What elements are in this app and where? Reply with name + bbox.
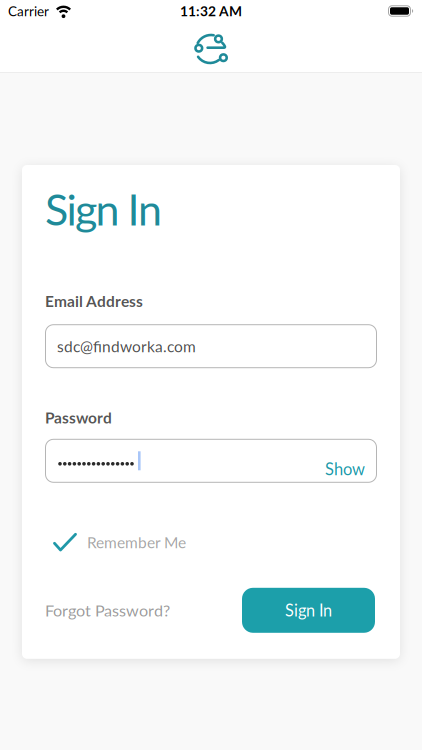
button[interactable]: Sign In (242, 588, 375, 633)
staticText: Sign In (45, 183, 162, 235)
staticText: sdc@findworka.com (57, 337, 196, 355)
staticText: 11:32 AM (180, 3, 242, 19)
button[interactable]: Remember Me (45, 533, 186, 552)
button[interactable]: Password (45, 439, 377, 483)
staticText: Forgot Password? (45, 601, 170, 620)
staticText: Password (45, 408, 112, 427)
button[interactable]: Show (325, 451, 377, 471)
staticText: Email Address (45, 292, 143, 310)
button[interactable]: sdc@findworka.com (45, 324, 377, 368)
staticText: Remember Me (87, 533, 186, 552)
button[interactable]: Forgot Password? (45, 601, 170, 620)
staticText: Carrier (8, 3, 49, 19)
staticText: Sign In (285, 600, 332, 620)
staticText: Show (325, 459, 365, 479)
